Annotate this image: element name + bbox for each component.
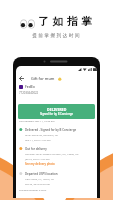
staticText: DELIVERED <box>47 107 67 111</box>
staticText: Mar 11, 2019 11:24 am <box>25 137 51 142</box>
button[interactable]: DELIVERED <box>18 104 95 119</box>
staticText: NEW YORK, NY, 10016, US <box>25 176 54 181</box>
staticText: Gift for mum <box>31 76 55 81</box>
button[interactable]: Delivered - Signed for by B Concierge <box>19 127 95 142</box>
button[interactable]: See my delivery photo <box>25 161 55 167</box>
button[interactable]: Back <box>18 75 25 82</box>
staticText: Last updated: Mar 11, 10:35 pm <box>19 120 55 123</box>
staticText: 提前掌握到达时间 <box>0 33 113 38</box>
staticText: 了如指掌 <box>36 17 94 28</box>
staticText: Delivered - Signed for by B Concierge <box>25 127 77 132</box>
staticText: 772030440022 <box>19 91 39 95</box>
staticText: Signed for by B Concierge <box>40 111 74 116</box>
staticText: MAIN ROAD 99, LONDON, UK <box>25 132 58 137</box>
staticText: Tracking number is ours. <box>19 189 47 192</box>
button[interactable]: Departed USPS location <box>19 171 95 186</box>
staticText: FedEx <box>25 84 35 89</box>
button[interactable]: Out for delivery <box>19 146 95 167</box>
staticText: LONDON MAIN STREET STATION, UK, 19000, U… <box>25 151 79 156</box>
staticText: Out for delivery <box>25 146 47 151</box>
staticText: Departed USPS location <box>25 171 58 176</box>
staticText: Jan 10, 2019 11:24 am <box>25 156 50 161</box>
staticText: Oct 25, 2019 03:04 am <box>25 181 50 186</box>
